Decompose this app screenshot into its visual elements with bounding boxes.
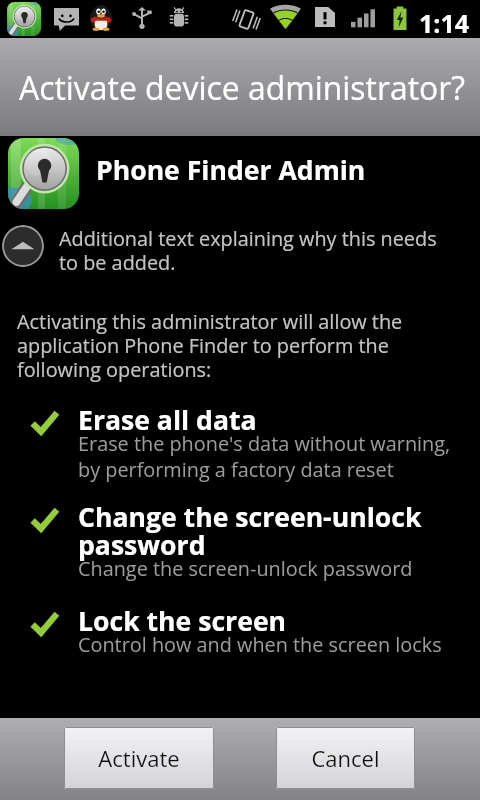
button[interactable]: Cancel [276, 727, 415, 789]
staticText: Erase all data [78, 402, 257, 438]
staticText: Phone Finder Admin [96, 152, 366, 188]
staticText: Change the screen-unlock password [78, 555, 413, 582]
staticText: 1:14 [419, 6, 470, 40]
staticText: Cancel [311, 743, 380, 773]
staticText: Additional text explaining why this need… [59, 225, 459, 276]
staticText: Change the screen-unlock password [78, 499, 466, 563]
staticText: Control how and when the screen locks [78, 631, 442, 658]
staticText: Erase the phone's data without warning, … [78, 430, 466, 482]
button[interactable]: Collapse additional text [2, 225, 44, 267]
button[interactable]: Activate [64, 727, 214, 789]
staticText: Activating this administrator will allow… [17, 308, 417, 383]
staticText: Lock the screen [78, 603, 287, 639]
staticText: Activate [98, 743, 180, 773]
staticText: Activate device administrator? [19, 66, 466, 109]
